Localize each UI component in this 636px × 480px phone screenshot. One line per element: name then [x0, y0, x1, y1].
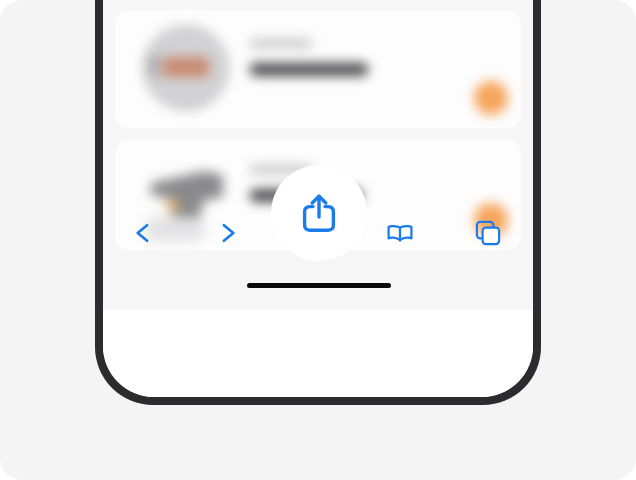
button[interactable]: Back — [120, 211, 164, 255]
button[interactable]: Forward — [207, 211, 251, 255]
button[interactable] — [115, 10, 521, 128]
button[interactable]: Bookmarks — [378, 211, 422, 255]
button[interactable] — [115, 140, 521, 250]
button[interactable]: Share — [271, 165, 367, 261]
button[interactable]: Tabs — [466, 211, 510, 255]
